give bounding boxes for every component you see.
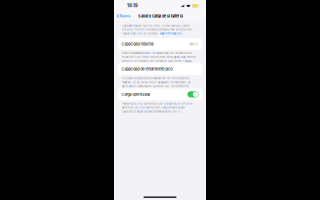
staticText: Capacidad máxima [121,42,153,46]
staticText: máximo. Si se detecta un apagado inesper… [122,81,191,84]
staticText: aplicará un sistema de gestión del rendi… [122,85,190,88]
staticText: aprende de tus hábitos de carga diarios … [122,106,184,109]
staticText: Para reducir el deterioro de la batería,… [122,102,193,105]
staticText: Capacidad de rendimiento pico [121,67,172,71]
staticText: 84 % [190,42,199,46]
staticText: esperar a cargar la batería más allá del… [122,110,182,113]
button[interactable]: Capacidad máxima [114,38,206,50]
button[interactable]: Carga optimizada [114,88,206,100]
staticText: Más información… [160,32,184,35]
staticText: reduce el número de horas de uso entre c… [122,59,192,62]
button[interactable]: Más información… [160,32,184,35]
button[interactable]: Batería [114,14,131,18]
staticText: Esta comparativa mide la capacidad de la… [122,51,192,55]
staticText: Salud y carga de la batería [138,14,183,18]
staticText: Las baterías de ion de litio, como las q… [122,24,190,27]
staticText: Batería [119,14,130,18]
staticText: iPhone, tienen una vida limitada y van p… [122,28,192,31]
staticText: relación con la de una nueva. Una capaci… [122,55,196,59]
staticText: 19:19 [127,3,138,8]
staticText: capacidad con el tiempo. [122,32,160,35]
staticText: Tu batería soporta normalmente un rendim… [122,77,190,80]
staticText: Carga optimizada [121,92,150,97]
button[interactable]: Capacidad de rendimiento pico [114,63,206,75]
